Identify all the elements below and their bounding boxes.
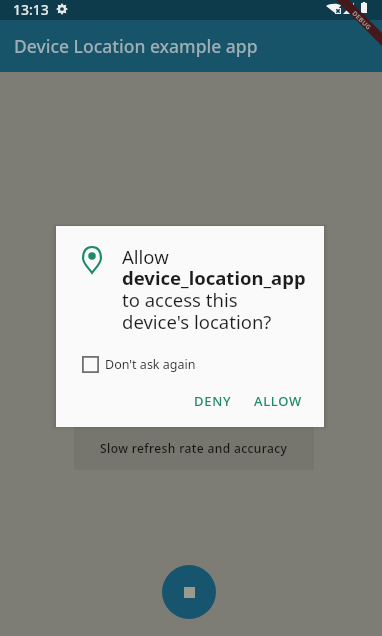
button[interactable]: ALLOW [254,392,302,410]
button[interactable]: DENY [194,392,232,410]
staticText: Device Location example app [14,34,258,58]
staticText: Don't ask again [105,356,196,373]
button[interactable]: Stop [162,565,216,619]
other: Settings [56,3,68,15]
button[interactable]: Slow refresh rate and accuracy [74,426,314,470]
staticText: DENY [194,392,232,410]
staticText: ALLOW [254,392,302,410]
staticText: Allow device_location_app to access this… [122,244,306,335]
staticText: 13:13 [13,0,49,19]
button[interactable]: Don't ask again [82,356,196,373]
staticText: DEBUG [350,9,374,32]
staticText: Slow refresh rate and accuracy [100,440,288,456]
